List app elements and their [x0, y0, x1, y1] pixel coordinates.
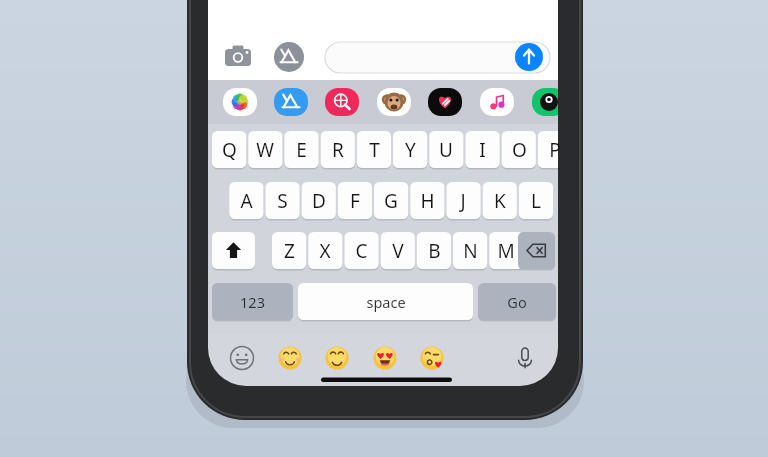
button[interactable]: Y [393, 131, 427, 168]
staticText: E [296, 137, 307, 163]
staticText: Z [284, 238, 295, 264]
staticText: B [428, 238, 441, 264]
button[interactable]: Backspace [518, 232, 555, 269]
button[interactable]: D [302, 182, 336, 219]
button[interactable]: F [338, 182, 372, 219]
staticText: D [312, 188, 326, 214]
button[interactable]: C [344, 232, 378, 269]
button[interactable]: H [410, 182, 444, 219]
button[interactable]: P [538, 131, 572, 168]
button[interactable]: Camera [225, 44, 252, 70]
staticText: V [392, 238, 404, 264]
staticText: P [549, 137, 561, 163]
button[interactable]: M [489, 232, 523, 269]
button[interactable]: R [321, 131, 355, 168]
button[interactable]: Go [478, 283, 556, 320]
button[interactable]: K [483, 182, 517, 219]
button[interactable]: Send [515, 43, 543, 71]
staticText: Y [405, 137, 416, 163]
button[interactable]: Emoji 3 [324, 345, 350, 371]
staticText: X [319, 238, 331, 264]
staticText: I [479, 137, 486, 163]
button[interactable]: space [298, 283, 473, 320]
staticText: U [439, 137, 453, 163]
button[interactable]: App Store [274, 42, 304, 72]
button[interactable]: S [265, 182, 299, 219]
button[interactable]: O [502, 131, 536, 168]
staticText: O [512, 137, 527, 163]
staticText: K [494, 188, 506, 214]
button[interactable]: iMessage app 4 [377, 88, 411, 116]
button[interactable]: Emoji 2 [277, 345, 303, 371]
staticText: C [355, 238, 368, 264]
staticText: space [366, 292, 406, 312]
staticText: H [420, 188, 435, 214]
staticText: L [531, 188, 541, 214]
button[interactable]: B [417, 232, 451, 269]
button[interactable]: Shift [212, 232, 255, 269]
button[interactable]: Emoji 1 [229, 345, 255, 371]
button[interactable]: iMessage app 5 [428, 88, 462, 116]
staticText: Go [507, 292, 527, 312]
button[interactable]: G [374, 182, 408, 219]
button[interactable]: Z [272, 232, 306, 269]
staticText: 123 [240, 292, 265, 312]
button[interactable]: iMessage app 3 [325, 88, 359, 116]
button[interactable]: T [357, 131, 391, 168]
staticText: W [256, 137, 274, 163]
button[interactable]: 123 [212, 283, 293, 320]
button[interactable]: Message field [325, 42, 515, 73]
button[interactable]: Dictate [511, 344, 539, 372]
button[interactable]: L [519, 182, 553, 219]
staticText: G [384, 188, 398, 214]
staticText: M [497, 238, 515, 264]
button[interactable]: iMessage app 6 [480, 88, 514, 116]
button[interactable]: Q [212, 131, 246, 168]
staticText: Q [222, 137, 237, 163]
button[interactable]: N [453, 232, 487, 269]
staticText: S [277, 188, 288, 214]
button[interactable]: A [229, 182, 263, 219]
button[interactable]: Emoji 4 [372, 345, 398, 371]
button[interactable]: iMessage app 1 [223, 88, 257, 116]
button[interactable]: W [248, 131, 282, 168]
staticText: R [332, 137, 344, 163]
staticText: N [463, 238, 478, 264]
button[interactable]: V [381, 232, 415, 269]
button[interactable]: U [429, 131, 463, 168]
button[interactable]: I [465, 131, 499, 168]
staticText: F [350, 188, 360, 214]
staticText: T [369, 137, 380, 163]
staticText: J [460, 188, 466, 214]
button[interactable]: iMessage app 2 [274, 88, 308, 116]
button[interactable]: Emoji 5 [419, 345, 445, 371]
button[interactable]: E [284, 131, 318, 168]
staticText: A [240, 188, 253, 214]
button[interactable]: X [308, 232, 342, 269]
button[interactable]: J [446, 182, 480, 219]
